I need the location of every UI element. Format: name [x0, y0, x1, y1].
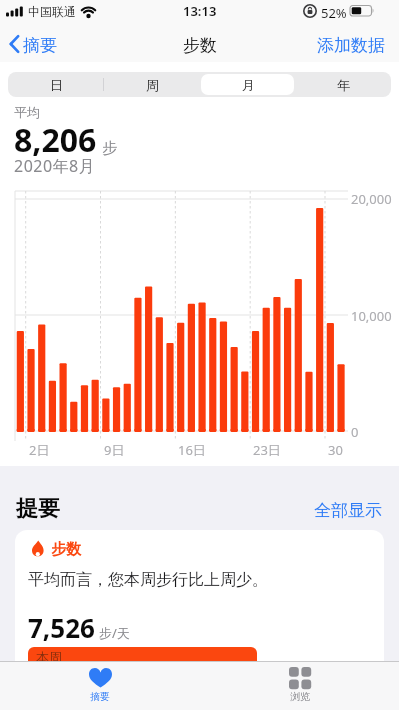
staticText: 步数	[51, 540, 81, 559]
button[interactable]: 周	[104, 72, 200, 97]
staticText: 16日	[178, 441, 206, 459]
button[interactable]: 日	[8, 72, 104, 97]
staticText: 10,000	[351, 307, 392, 325]
button[interactable]: 月	[200, 72, 296, 97]
staticText: 日	[50, 77, 63, 93]
staticText: 2日	[29, 441, 50, 459]
staticText: 浏览	[260, 690, 340, 703]
staticText: 7,526	[28, 610, 95, 645]
staticText: 摘要	[60, 690, 140, 703]
staticText: 30	[328, 441, 343, 459]
staticText: 本周	[36, 649, 62, 665]
button[interactable]	[9, 35, 21, 53]
staticText: 中国联通	[28, 4, 76, 19]
button[interactable]: 步数	[15, 530, 384, 705]
button[interactable]: 摘要	[60, 662, 140, 710]
staticText: 步数	[183, 35, 217, 56]
button[interactable]: 摘要	[23, 35, 57, 56]
staticText: 8,206	[14, 118, 97, 162]
staticText: 平均	[14, 104, 40, 120]
staticText: 13:13	[183, 2, 217, 20]
staticText: 周	[146, 77, 159, 93]
button[interactable]: 全部显示	[314, 500, 382, 521]
staticText: 52%	[321, 4, 347, 22]
staticText: 年	[337, 77, 350, 93]
staticText: 步/天	[99, 624, 130, 642]
button[interactable]: 年	[295, 72, 391, 97]
button[interactable]: 添加数据	[317, 35, 385, 56]
button[interactable]: 浏览	[260, 662, 340, 710]
staticText: 提要	[16, 495, 60, 523]
staticText: 步	[102, 139, 117, 158]
staticText: 0	[351, 423, 359, 441]
staticText: 平均而言，您本周步行比上周少。	[28, 570, 268, 590]
staticText: 23日	[253, 441, 281, 459]
staticText: 9日	[104, 441, 125, 459]
staticText: 20,000	[351, 190, 392, 208]
staticText: 2020年8月	[14, 155, 96, 177]
staticText: 月	[242, 77, 255, 93]
